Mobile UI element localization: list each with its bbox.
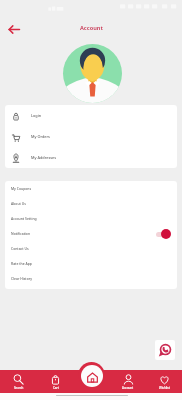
button[interactable]: Login bbox=[5, 105, 177, 126]
staticText: My Coupons bbox=[11, 186, 32, 191]
button[interactable]: Search bbox=[0, 370, 37, 393]
button[interactable]: Notification bbox=[5, 226, 177, 241]
button[interactable]: Clear History bbox=[5, 271, 177, 286]
staticText: Contact Us bbox=[11, 246, 29, 251]
button[interactable]: My Addresses bbox=[5, 147, 177, 168]
button[interactable]: Contact Us bbox=[5, 241, 177, 256]
button[interactable]: Cart bbox=[37, 370, 74, 393]
staticText: My Addresses bbox=[31, 155, 57, 160]
staticText: Wishlist bbox=[159, 386, 170, 390]
staticText: Account bbox=[80, 24, 103, 32]
staticText: Rate the App bbox=[11, 261, 32, 266]
staticText: Clear History bbox=[11, 276, 32, 281]
button[interactable]: WhatsApp bbox=[155, 340, 175, 360]
button[interactable]: Back bbox=[4, 20, 24, 38]
button[interactable]: Wishlist bbox=[146, 370, 182, 393]
button[interactable]: About Us bbox=[5, 196, 177, 211]
button[interactable]: My Coupons bbox=[5, 181, 177, 196]
staticText: Login bbox=[31, 113, 42, 118]
staticText: Account bbox=[122, 386, 134, 390]
button[interactable]: Rate the App bbox=[5, 256, 177, 271]
staticText: Cart bbox=[53, 386, 59, 390]
button[interactable]: Home bbox=[78, 362, 105, 389]
button[interactable]: My Orders bbox=[5, 126, 177, 147]
staticText: About Us bbox=[11, 201, 26, 206]
button[interactable]: Account Setting bbox=[5, 211, 177, 226]
button[interactable]: Account bbox=[110, 370, 146, 393]
staticText: Account Setting bbox=[11, 216, 37, 221]
staticText: Notification bbox=[11, 231, 31, 236]
staticText: My Orders bbox=[31, 134, 50, 139]
staticText: Search bbox=[14, 386, 24, 390]
